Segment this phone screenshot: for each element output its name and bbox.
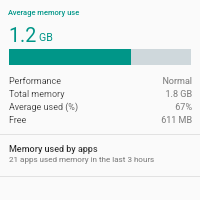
- button[interactable]: Total memory: [0, 89, 200, 102]
- staticText: Average memory use: [8, 8, 80, 17]
- staticText: Performance: [9, 76, 62, 87]
- button[interactable]: Performance: [0, 76, 200, 89]
- staticText: 611 MB: [161, 115, 192, 126]
- button[interactable]: Memory used by apps: [0, 138, 200, 176]
- staticText: Free: [9, 115, 27, 126]
- staticText: 1.8 GB: [165, 89, 192, 100]
- staticText: Normal: [162, 76, 192, 87]
- staticText: Average used (%): [9, 102, 79, 113]
- staticText: Memory used by apps: [9, 144, 98, 155]
- staticText: Total memory: [9, 89, 65, 100]
- staticText: GB: [39, 31, 53, 43]
- button[interactable]: Average used (%): [0, 102, 200, 115]
- staticText: 21 apps used memory in the last 3 hours: [9, 155, 155, 164]
- button[interactable]: Average memory use: [0, 0, 200, 70]
- staticText: 67%: [175, 102, 192, 113]
- button[interactable]: Free: [0, 115, 200, 128]
- staticText: 1.2: [9, 24, 37, 47]
